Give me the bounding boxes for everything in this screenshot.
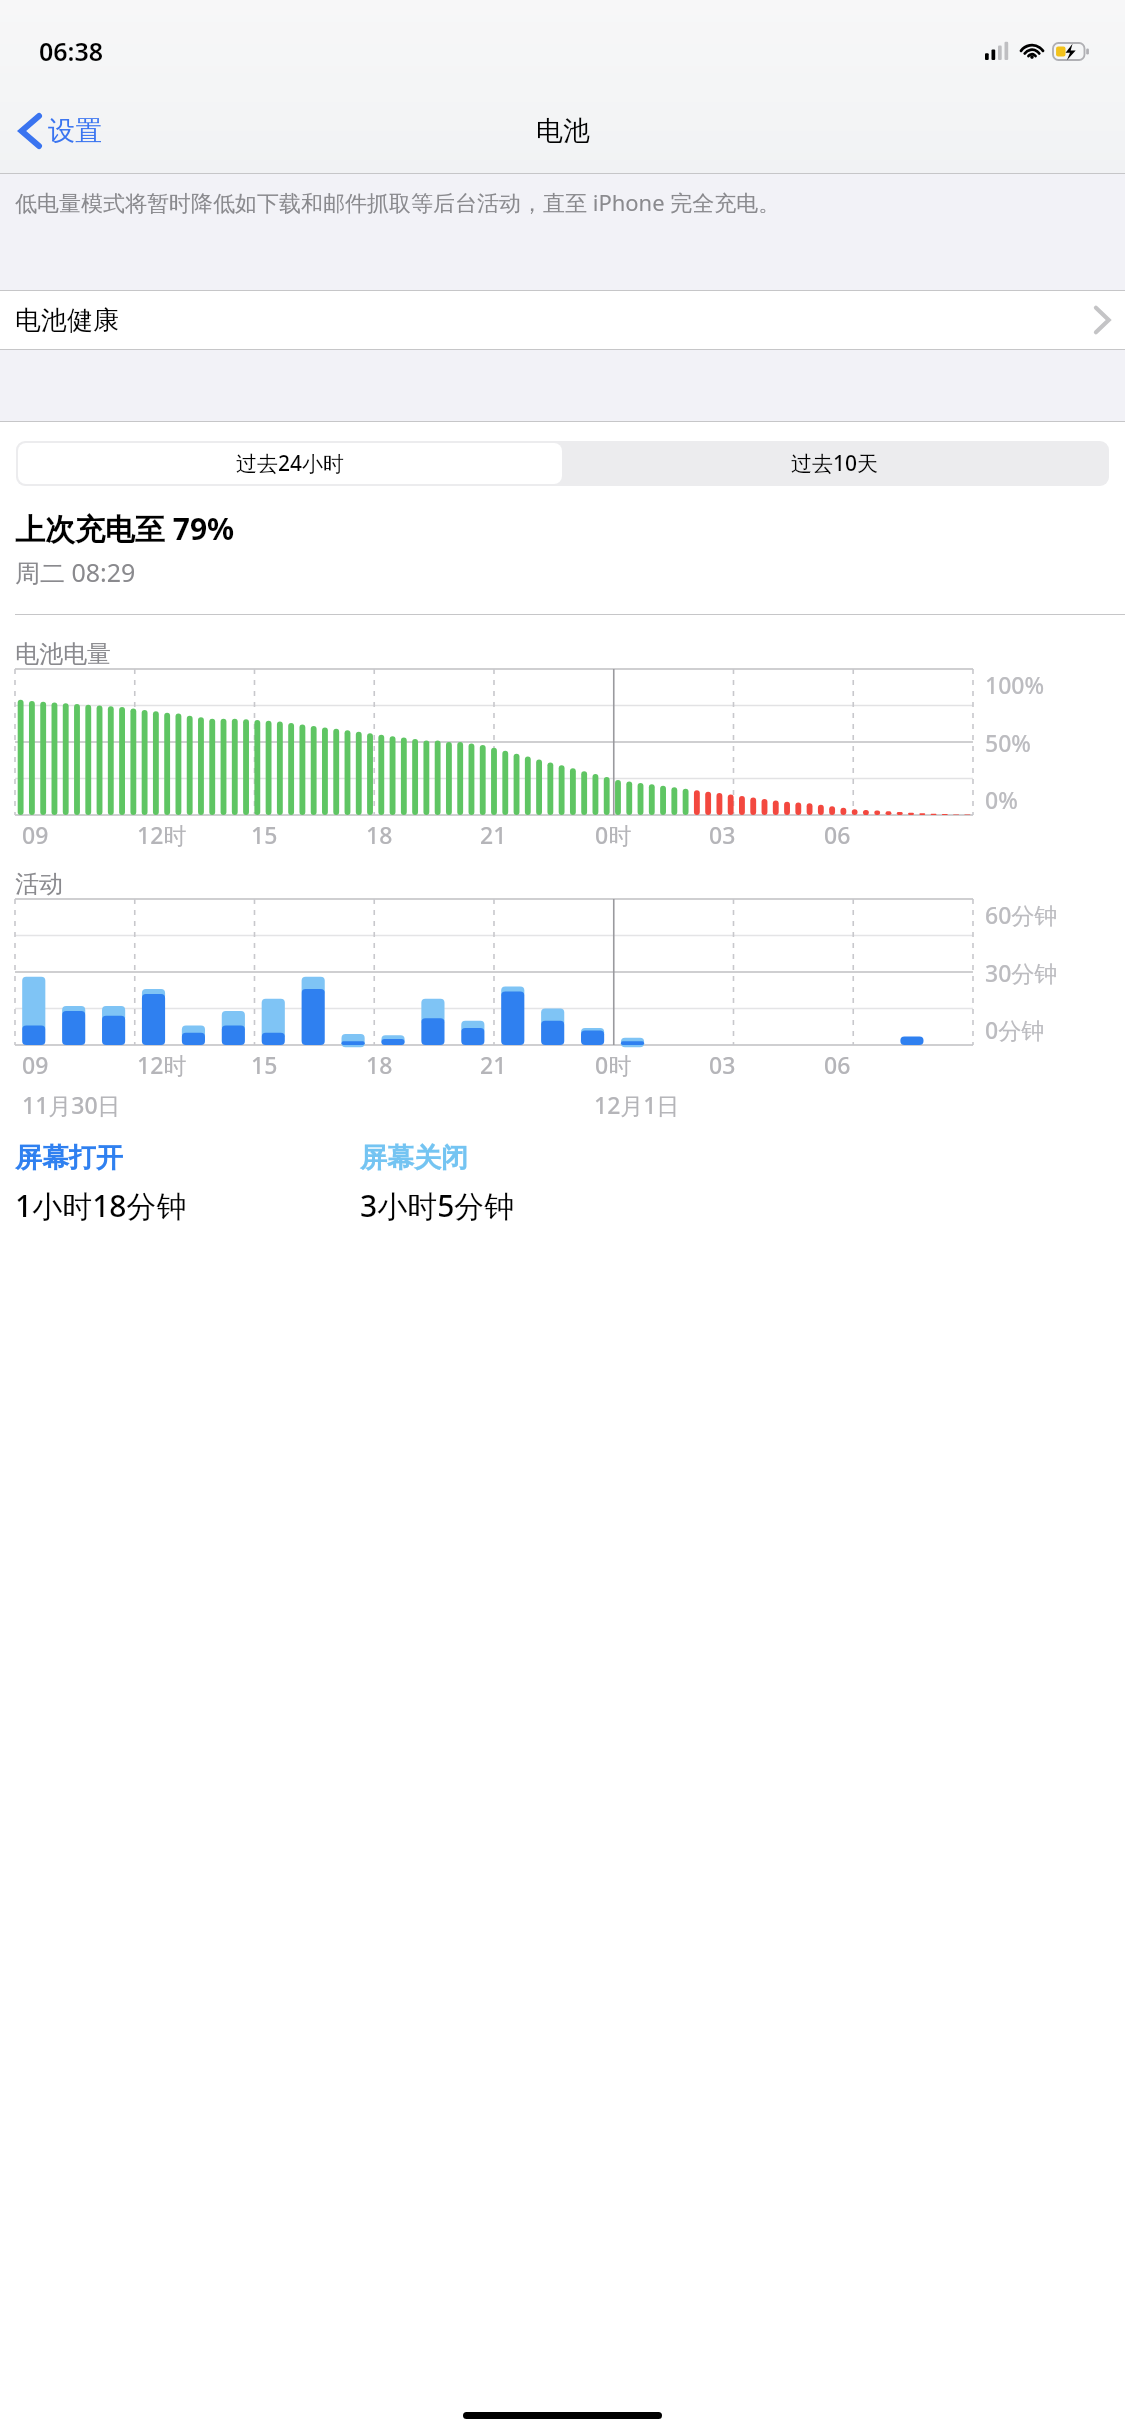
staticText: 电池电量: [15, 639, 111, 669]
staticText: 低电量模式将暂时降低如下载和邮件抓取等后台活动，直至 iPhone 完全充电。: [15, 187, 781, 217]
staticText: 过去24小时: [236, 449, 345, 478]
staticText: 06:38: [39, 34, 104, 68]
staticText: 12时: [137, 1049, 187, 1080]
staticText: 12时: [137, 819, 187, 850]
staticText: 18: [366, 819, 393, 850]
staticText: 0时: [595, 819, 632, 850]
staticText: 06: [824, 1049, 851, 1080]
staticText: 15: [251, 819, 278, 850]
staticText: 活动: [15, 869, 63, 899]
button[interactable]: 电池健康: [0, 291, 1125, 349]
staticText: 1小时18分钟: [15, 1185, 187, 1226]
staticText: 设置: [48, 114, 102, 148]
staticText: 60分钟: [985, 899, 1058, 930]
staticText: 50%: [985, 727, 1031, 758]
staticText: 03: [709, 819, 736, 850]
staticText: 0%: [985, 784, 1018, 815]
staticText: 周二 08:29: [15, 555, 136, 589]
staticText: 30分钟: [985, 957, 1058, 988]
staticText: 100%: [985, 669, 1045, 700]
staticText: 上次充电至 79%: [15, 508, 235, 549]
staticText: 09: [22, 819, 49, 850]
staticText: 电池: [536, 114, 590, 148]
staticText: 21: [480, 1049, 507, 1080]
staticText: 电池健康: [15, 304, 119, 337]
button[interactable]: 过去10天: [562, 443, 1107, 484]
staticText: 21: [480, 819, 507, 850]
staticText: 11月30日: [22, 1089, 121, 1119]
button[interactable]: 设置: [12, 108, 110, 154]
staticText: 09: [22, 1049, 49, 1080]
staticText: 03: [709, 1049, 736, 1080]
staticText: 3小时5分钟: [360, 1185, 515, 1226]
staticText: 过去10天: [791, 449, 879, 478]
staticText: 屏幕关闭: [360, 1141, 468, 1175]
staticText: 15: [251, 1049, 278, 1080]
staticText: 18: [366, 1049, 393, 1080]
staticText: 0时: [595, 1049, 632, 1080]
button[interactable]: 过去24小时: [18, 443, 562, 484]
staticText: 12月1日: [594, 1089, 680, 1119]
staticText: 0分钟: [985, 1014, 1045, 1045]
staticText: 屏幕打开: [15, 1141, 123, 1175]
staticText: 06: [824, 819, 851, 850]
